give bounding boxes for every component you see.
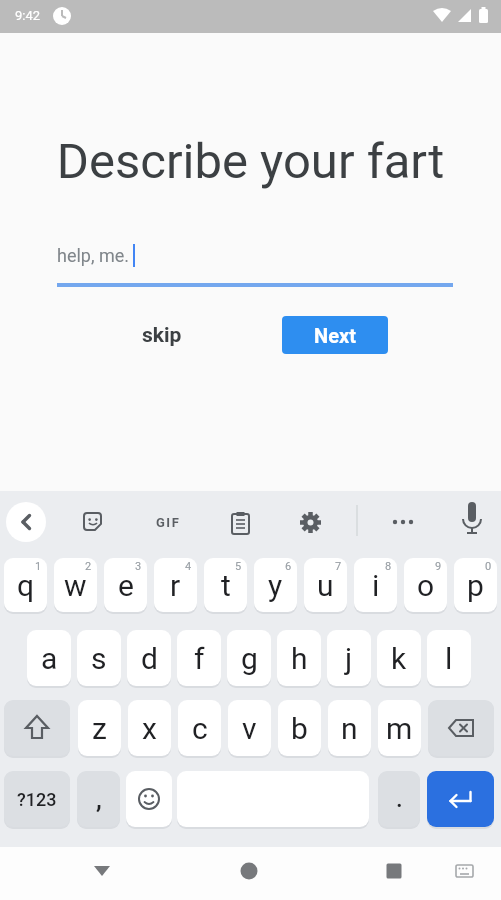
- staticText: h: [291, 641, 308, 676]
- staticText: y: [268, 568, 283, 603]
- staticText: 1: [35, 560, 42, 573]
- button[interactable]: q: [4, 558, 47, 612]
- staticText: ,: [96, 784, 102, 814]
- button[interactable]: [126, 771, 172, 827]
- staticText: 4: [185, 560, 192, 573]
- button[interactable]: p: [454, 558, 497, 612]
- button[interactable]: f: [177, 630, 221, 686]
- button[interactable]: c: [178, 700, 221, 756]
- staticText: b: [291, 711, 308, 746]
- button[interactable]: k: [377, 630, 421, 686]
- button[interactable]: a: [27, 630, 71, 686]
- button[interactable]: [6, 502, 46, 542]
- staticText: u: [317, 568, 334, 603]
- staticText: r: [170, 568, 181, 603]
- staticText: 3: [135, 560, 142, 573]
- button[interactable]: j: [327, 630, 371, 686]
- button[interactable]: y: [254, 558, 297, 612]
- button[interactable]: ?123: [4, 771, 70, 827]
- staticText: s: [91, 641, 107, 676]
- button[interactable]: GIF: [150, 508, 186, 536]
- button[interactable]: [229, 511, 252, 534]
- staticText: j: [345, 641, 353, 676]
- staticText: 0: [485, 560, 492, 573]
- staticText: help, me.: [57, 245, 130, 266]
- button[interactable]: [81, 510, 105, 534]
- button[interactable]: u: [304, 558, 347, 612]
- staticText: 7: [335, 560, 342, 573]
- staticText: Describe your fart: [0, 133, 501, 190]
- staticText: 9:42: [15, 8, 41, 23]
- staticText: .: [396, 785, 403, 813]
- button[interactable]: d: [127, 630, 171, 686]
- staticText: i: [372, 568, 380, 603]
- staticText: 8: [385, 560, 392, 573]
- staticText: GIF: [156, 515, 181, 530]
- staticText: e: [118, 568, 134, 603]
- button[interactable]: i: [354, 558, 397, 612]
- staticText: q: [17, 568, 35, 603]
- staticText: f: [194, 641, 205, 676]
- button[interactable]: o: [404, 558, 447, 612]
- staticText: c: [192, 711, 208, 746]
- button[interactable]: z: [78, 700, 121, 756]
- button[interactable]: s: [77, 630, 121, 686]
- staticText: o: [417, 568, 435, 603]
- button[interactable]: skip: [125, 316, 199, 354]
- button[interactable]: m: [378, 700, 421, 756]
- button[interactable]: Next: [282, 316, 388, 354]
- staticText: x: [142, 711, 157, 746]
- button[interactable]: n: [328, 700, 371, 756]
- button[interactable]: l: [427, 630, 471, 686]
- button[interactable]: [378, 855, 410, 887]
- button[interactable]: [427, 771, 494, 827]
- button[interactable]: g: [227, 630, 271, 686]
- staticText: t: [221, 568, 231, 603]
- button[interactable]: w: [54, 558, 97, 612]
- button[interactable]: v: [228, 700, 271, 756]
- button[interactable]: [86, 855, 118, 887]
- staticText: k: [391, 641, 407, 676]
- staticText: w: [64, 568, 87, 603]
- staticText: v: [242, 711, 257, 746]
- button[interactable]: e: [104, 558, 147, 612]
- staticText: n: [341, 711, 358, 746]
- button[interactable]: [299, 511, 322, 534]
- staticText: 6: [285, 560, 292, 573]
- button[interactable]: r: [154, 558, 197, 612]
- staticText: p: [467, 568, 484, 603]
- staticText: l: [445, 641, 453, 676]
- staticText: 9: [435, 560, 442, 573]
- staticText: ?123: [17, 789, 57, 810]
- staticText: 5: [235, 560, 242, 573]
- button[interactable]: b: [278, 700, 321, 756]
- staticText: z: [92, 711, 107, 746]
- button[interactable]: [233, 855, 265, 887]
- staticText: Next: [314, 324, 356, 347]
- staticText: g: [241, 641, 258, 676]
- button[interactable]: ,: [77, 771, 120, 827]
- button[interactable]: h: [277, 630, 321, 686]
- button[interactable]: x: [128, 700, 171, 756]
- staticText: m: [386, 711, 413, 746]
- staticText: skip: [142, 323, 182, 348]
- button[interactable]: [428, 700, 494, 756]
- staticText: a: [41, 641, 58, 676]
- button[interactable]: t: [204, 558, 247, 612]
- staticText: 2: [85, 560, 92, 573]
- staticText: d: [141, 641, 158, 676]
- button[interactable]: .: [378, 771, 420, 827]
- button[interactable]: [450, 859, 478, 887]
- button[interactable]: [4, 700, 70, 756]
